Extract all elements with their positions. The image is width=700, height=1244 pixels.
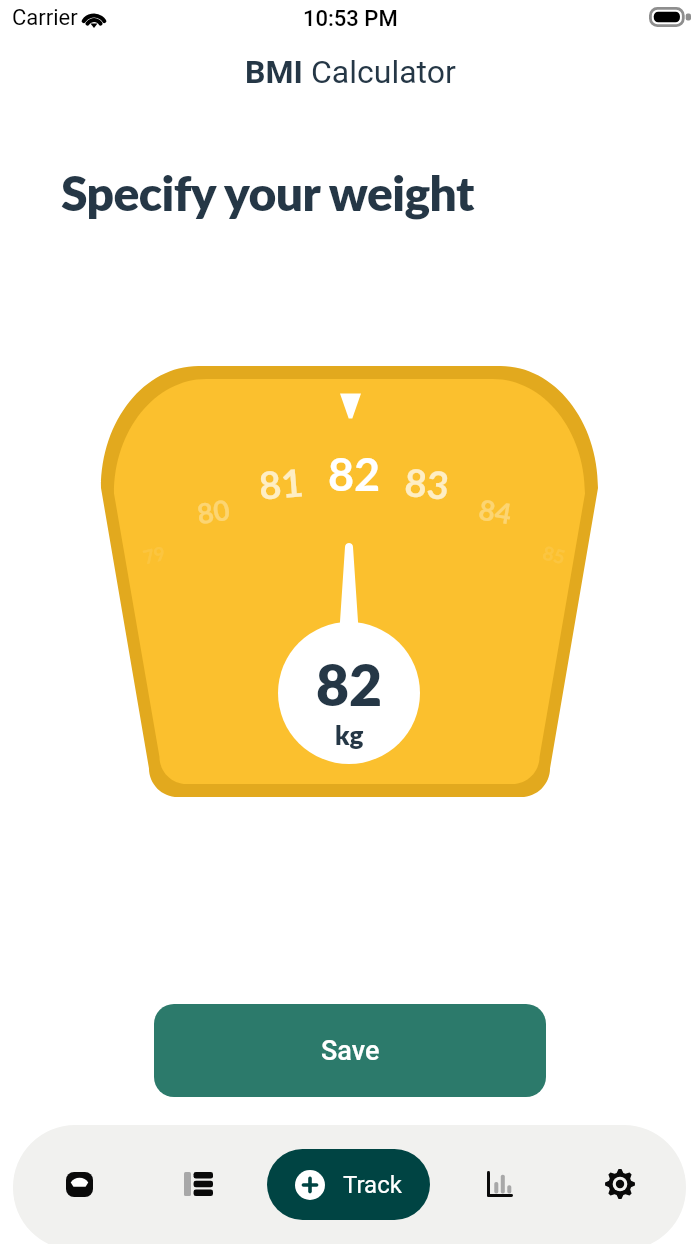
button[interactable]: Save <box>154 1004 546 1097</box>
staticText: Track <box>343 1171 402 1199</box>
staticText: Carrier <box>12 5 78 31</box>
staticText: kg <box>335 719 364 750</box>
button[interactable]: Statistics <box>470 1154 530 1214</box>
staticText: 81 <box>257 458 306 508</box>
staticText: Save <box>321 1035 380 1067</box>
staticText: 10:53 PM <box>303 6 398 32</box>
staticText: Specify your weight <box>61 164 474 222</box>
staticText: Calculator <box>311 53 456 91</box>
staticText: 82 <box>316 650 383 718</box>
staticText: 82 <box>328 447 381 501</box>
button[interactable]: Weight <box>49 1154 109 1214</box>
button[interactable]: Settings <box>590 1154 650 1214</box>
staticText: 84 <box>476 491 515 530</box>
button[interactable]: Track <box>267 1149 430 1220</box>
staticText: 80 <box>194 491 233 530</box>
staticText: 83 <box>403 458 452 508</box>
staticText: BMI <box>245 53 311 91</box>
staticText: 79 <box>141 541 168 568</box>
staticText: 85 <box>541 541 568 568</box>
button[interactable]: History <box>168 1154 228 1214</box>
